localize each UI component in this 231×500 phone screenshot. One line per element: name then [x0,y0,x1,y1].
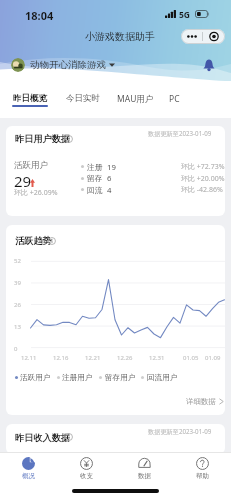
staticText: 18:04 [25,8,54,23]
staticText: 概况 [22,472,35,480]
button[interactable]: 动物开心消除游戏 [30,58,115,72]
staticText: 帮助 [196,472,209,480]
button[interactable]: MAU用户 [114,86,156,112]
staticText: 数据更新至2023-01-09 [148,427,212,435]
staticText: 活跃用户 [14,160,48,171]
staticText: 活跃用户 [20,373,51,383]
staticText: 26 [14,301,21,309]
staticText: 12.11 [21,354,37,362]
staticText: 注册 [87,162,103,172]
button[interactable]: 数据 [115,453,173,487]
staticText: 留存 [87,173,103,183]
staticText: 环比 +26.09% [14,188,58,198]
staticText: 详细数据 [186,397,216,406]
staticText: 01.09 [205,354,221,362]
staticText: 29 [14,171,32,191]
staticText: 6 [107,173,112,184]
staticText: 回流 [87,185,103,195]
staticText: 4 [107,185,112,196]
button[interactable]: 今日实时 [61,86,105,112]
staticText: 数据更新至2023-01-09 [148,129,212,137]
staticText: 环比 -42.86% [181,185,223,195]
button[interactable]: Info [65,433,73,441]
staticText: 12.31 [149,354,165,362]
staticText: 小游戏数据助手 [85,30,155,43]
staticText: 昨日收入数据 [15,432,71,444]
staticText: 昨日用户数据 [15,133,71,145]
staticText: 今日实时 [66,93,100,104]
staticText: 13 [14,323,21,331]
staticText: 活跃趋势 [15,235,52,247]
staticText: 动物开心消除游戏 [30,59,106,71]
staticText: 回流用户 [147,373,178,383]
button[interactable]: Menu and close [181,29,225,44]
staticText: 52 [14,257,21,265]
button[interactable]: 概况 [0,453,57,487]
button[interactable]: Info [65,135,73,143]
button[interactable]: PC [160,86,188,112]
button[interactable]: 详细数据 [186,394,224,408]
staticText: 12.26 [117,354,133,362]
staticText: 12.16 [53,354,69,362]
button[interactable]: 收支 [57,453,115,487]
button[interactable]: 帮助 [173,453,231,487]
staticText: 注册用户 [62,373,93,383]
staticText: 环比 +20.00% [181,174,225,184]
staticText: 12.21 [85,354,101,362]
staticText: 5G [179,9,191,18]
staticText: 留存用户 [105,373,136,383]
staticText: 39 [14,279,21,287]
staticText: 环比 +72.73% [181,162,225,172]
staticText: MAU用户 [117,93,154,105]
staticText: 数据 [138,472,151,480]
staticText: 01.05 [183,354,199,362]
staticText: 0 [14,345,18,353]
button[interactable]: 昨日概览 [6,86,54,112]
staticText: 昨日概览 [13,93,47,104]
button[interactable]: Notifications [198,54,220,76]
staticText: PC [169,93,180,105]
staticText: 19 [107,162,116,173]
staticText: 收支 [80,472,93,480]
button[interactable]: Info [48,237,56,245]
